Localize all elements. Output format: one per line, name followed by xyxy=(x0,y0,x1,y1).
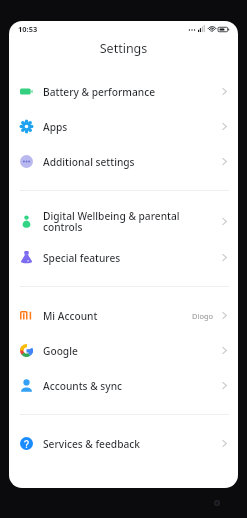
staticText: Digital Wellbeing & parental controls xyxy=(43,209,214,234)
button[interactable]: Services & feedback xyxy=(9,426,238,461)
staticText: Battery & performance xyxy=(43,85,214,99)
button[interactable]: Google xyxy=(9,333,238,368)
other: Camera xyxy=(214,500,220,506)
button[interactable]: Mi Account xyxy=(9,298,238,333)
staticText: Google xyxy=(43,344,214,358)
staticText: Apps xyxy=(43,120,214,134)
button[interactable]: Accounts & sync xyxy=(9,368,238,403)
button[interactable]: Additional settings xyxy=(9,144,238,179)
staticText: Settings xyxy=(9,40,238,57)
staticText: Diogo xyxy=(192,311,214,321)
staticText: Special features xyxy=(43,251,214,265)
staticText: 10:53 xyxy=(18,24,38,34)
staticText: Services & feedback xyxy=(43,437,214,451)
staticText: Accounts & sync xyxy=(43,379,214,393)
button[interactable]: Digital Wellbeing & parental controls xyxy=(9,202,238,240)
button[interactable]: Apps xyxy=(9,109,238,144)
staticText: Mi Account xyxy=(43,309,186,323)
button[interactable]: Battery & performance xyxy=(9,74,238,109)
staticText: Additional settings xyxy=(43,155,214,169)
button[interactable]: Special features xyxy=(9,240,238,275)
